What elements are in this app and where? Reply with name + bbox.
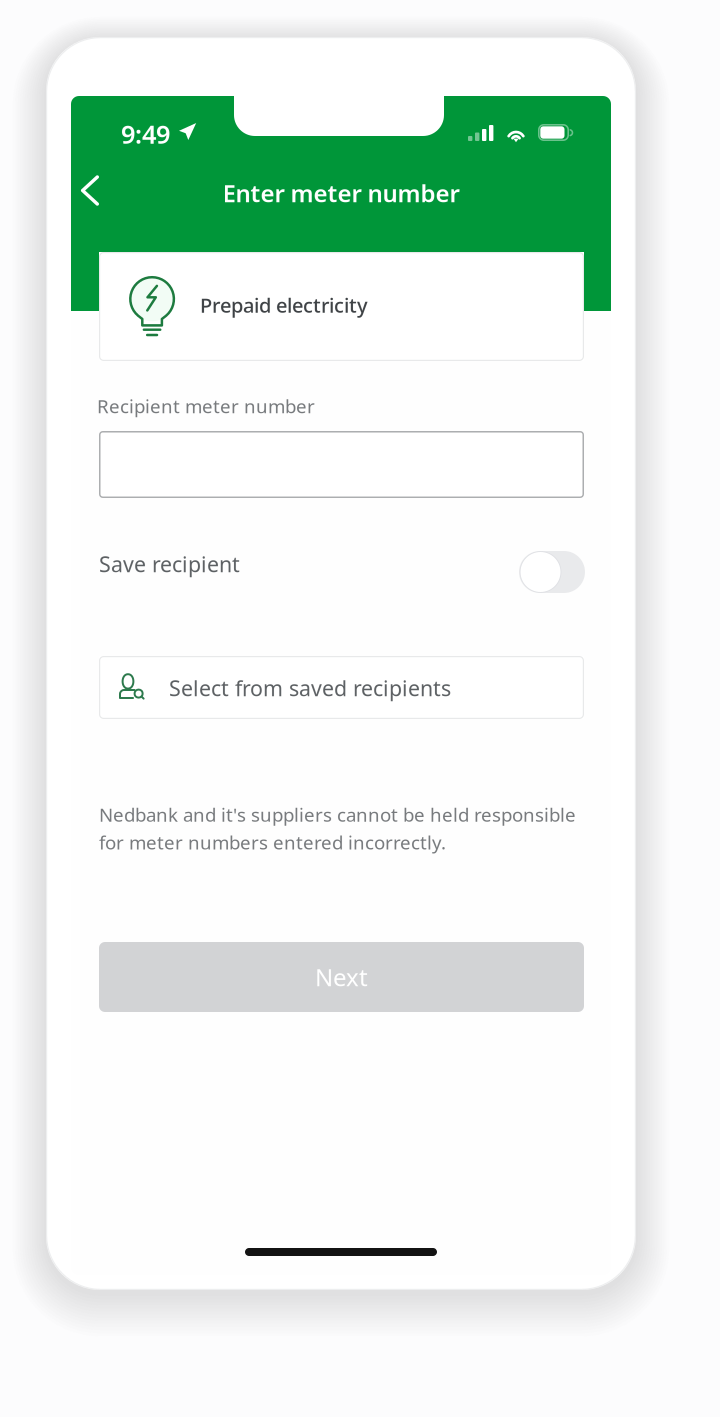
button[interactable]: Next — [99, 942, 584, 1012]
staticText: for meter numbers entered incorrectly. — [99, 830, 446, 855]
button[interactable]: Back — [71, 163, 131, 219]
staticText: Save recipient — [99, 550, 240, 578]
staticText: Prepaid electricity — [200, 292, 368, 318]
button[interactable]: Save recipient — [99, 543, 584, 597]
staticText: Select from saved recipients — [169, 674, 451, 702]
staticText: Recipient meter number — [97, 394, 315, 418]
staticText: 9:49 — [121, 117, 170, 151]
staticText: Next — [315, 961, 368, 993]
button[interactable]: Select from saved recipients — [99, 656, 584, 719]
staticText: Nedbank and it's suppliers cannot be hel… — [99, 802, 576, 827]
staticText: Enter meter number — [222, 177, 459, 209]
